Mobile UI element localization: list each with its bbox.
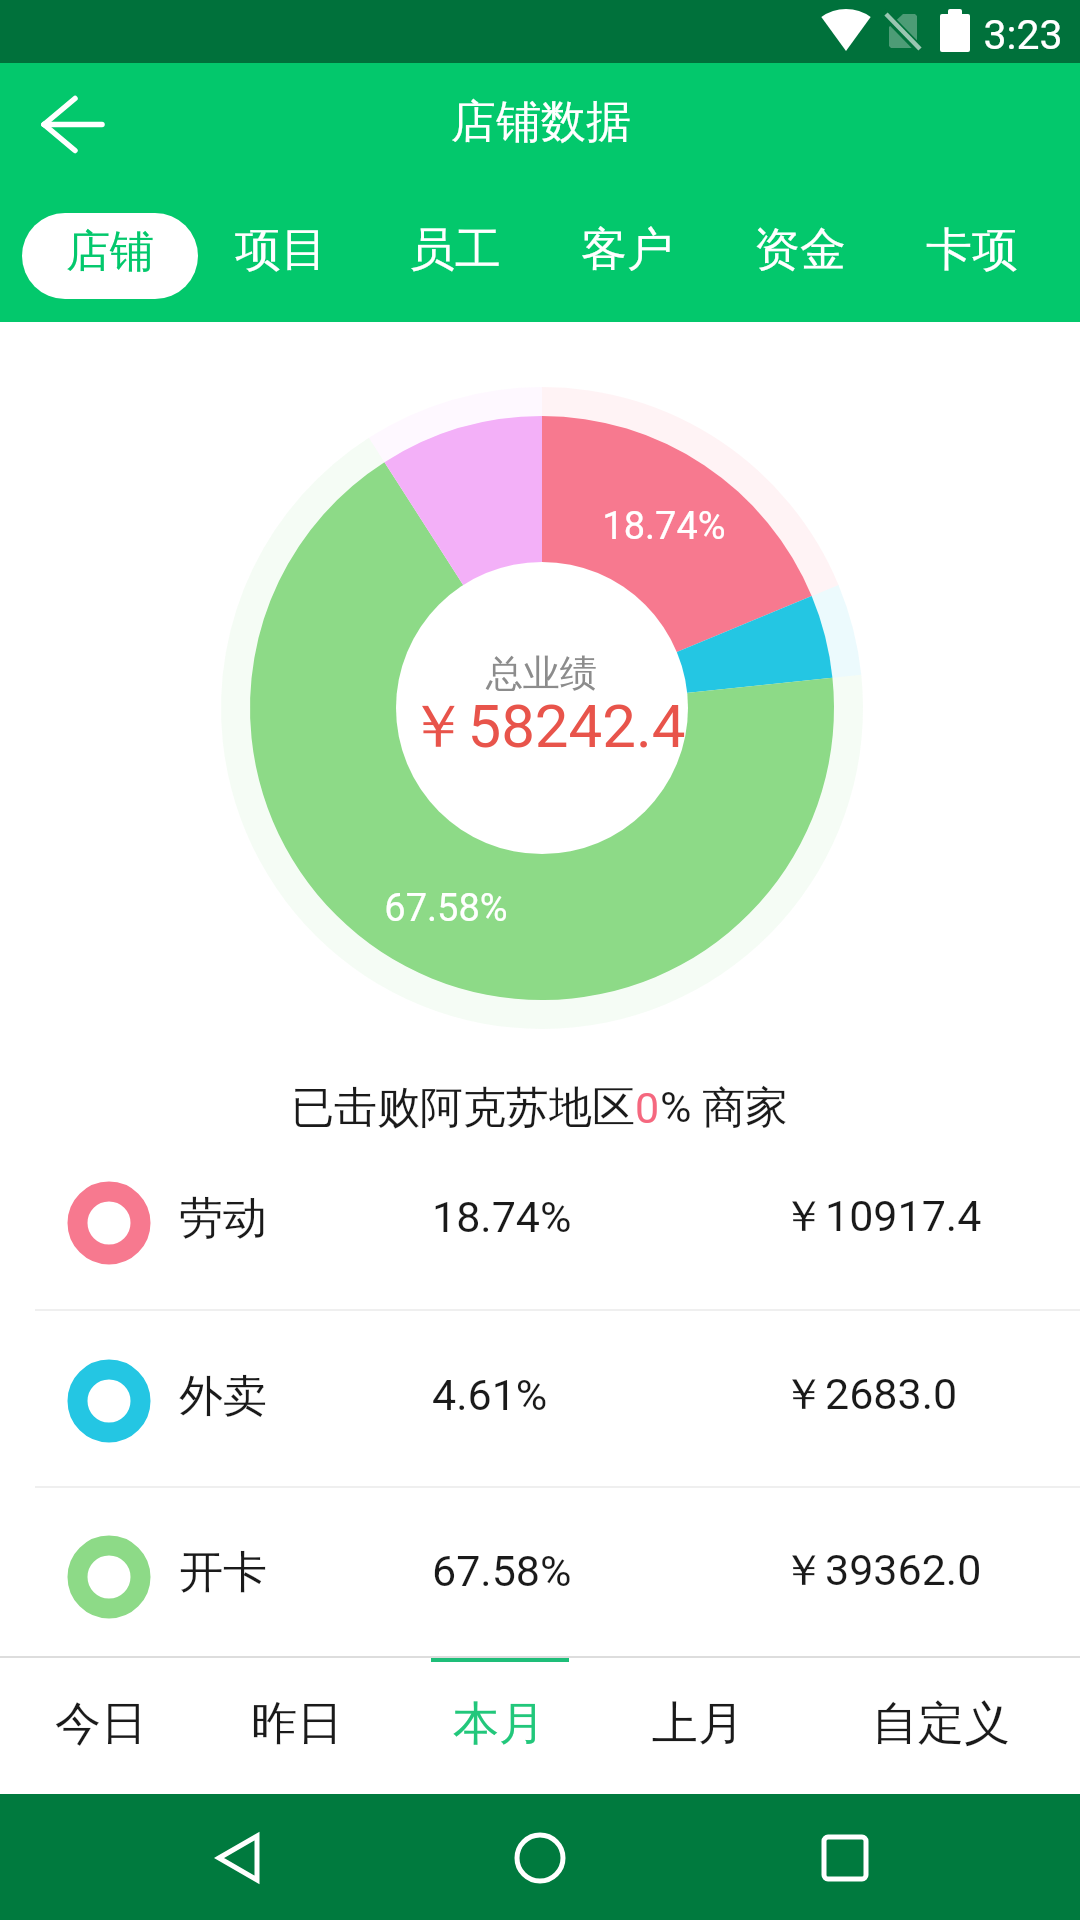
staticText: 上月 [652, 1695, 744, 1753]
button[interactable]: 卡项 [902, 202, 1042, 298]
button[interactable]: 外卖 [0, 1313, 1080, 1489]
staticText: 卡项 [926, 221, 1018, 279]
staticText: ￥2683.0 [782, 1368, 958, 1422]
staticText: ￥10917.4 [782, 1190, 982, 1244]
staticText: 本月 [453, 1695, 545, 1753]
staticText: 客户 [581, 221, 673, 279]
staticText: 昨日 [251, 1695, 343, 1753]
staticText: 资金 [754, 221, 846, 279]
button[interactable]: 开卡 [0, 1489, 1080, 1665]
staticText: 外卖 [179, 1369, 267, 1424]
staticText: 总业绩 [486, 650, 597, 697]
button[interactable]: Back [177, 1809, 303, 1905]
staticText: 劳动 [179, 1191, 267, 1246]
button[interactable]: 上月 [608, 1665, 788, 1783]
button[interactable]: 资金 [730, 202, 870, 298]
button[interactable]: 项目 [211, 202, 351, 298]
staticText: 项目 [235, 221, 327, 279]
button[interactable]: 本月 [409, 1665, 589, 1783]
staticText: 今日 [55, 1695, 147, 1753]
staticText: 店铺数据 [451, 94, 631, 151]
button[interactable]: 劳动 [0, 1135, 1080, 1311]
button[interactable]: 自定义 [851, 1665, 1031, 1783]
button[interactable]: 店铺 [22, 213, 198, 299]
button[interactable]: Back [24, 81, 110, 167]
staticText: 3:23 [983, 11, 1063, 59]
staticText: 18.74% [432, 1192, 572, 1242]
button[interactable]: 员工 [385, 202, 525, 298]
staticText: 店铺 [66, 224, 154, 279]
button[interactable]: 昨日 [207, 1665, 387, 1783]
staticText: % 商家 [660, 1081, 789, 1135]
staticText: ￥39362.0 [782, 1544, 982, 1598]
staticText: 67.58% [432, 1546, 572, 1596]
button[interactable]: 今日 [11, 1665, 191, 1783]
staticText: 18.74% [602, 504, 726, 549]
staticText: 已击败阿克苏地区 [291, 1081, 635, 1135]
staticText: 0 [635, 1083, 660, 1133]
button[interactable]: 客户 [557, 202, 697, 298]
staticText: 67.58% [384, 886, 508, 931]
button[interactable]: Recent apps [782, 1809, 908, 1905]
staticText: 员工 [409, 221, 501, 279]
button[interactable]: Home [477, 1809, 603, 1905]
staticText: 开卡 [179, 1545, 267, 1600]
staticText: 4.61% [432, 1370, 548, 1420]
staticText: ￥58242.4 [407, 689, 686, 765]
staticText: 自定义 [872, 1695, 1010, 1753]
